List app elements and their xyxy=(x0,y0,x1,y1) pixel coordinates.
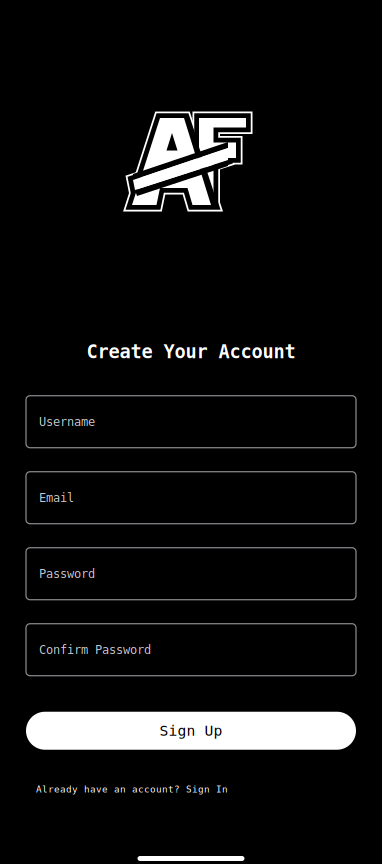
staticText: Password xyxy=(39,567,95,581)
staticText: Email xyxy=(39,491,74,505)
staticText: Sign Up xyxy=(159,722,222,739)
staticText: Create Your Account xyxy=(86,341,295,363)
button[interactable]: Already have an account? Sign In xyxy=(36,784,228,795)
staticText: Already have an account? Sign In xyxy=(36,784,228,795)
button[interactable]: Username xyxy=(26,396,356,448)
staticText: Username xyxy=(39,415,95,429)
button[interactable]: Password xyxy=(26,548,356,600)
button[interactable]: Confirm Password xyxy=(26,624,356,676)
staticText: Confirm Password xyxy=(39,643,151,657)
button[interactable]: Email xyxy=(26,472,356,524)
button[interactable]: Sign Up xyxy=(26,712,356,750)
